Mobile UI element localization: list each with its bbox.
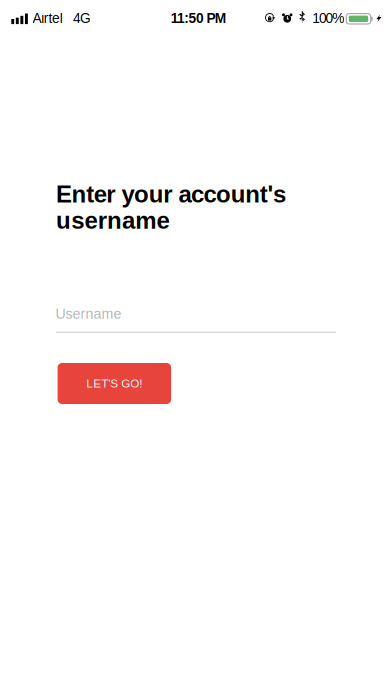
button[interactable]: Username	[56, 300, 336, 334]
staticText: 100%	[312, 11, 344, 26]
staticText: LET'S GO!	[86, 377, 142, 390]
staticText: 4G	[73, 10, 91, 26]
staticText: Username	[56, 306, 122, 322]
staticText: username	[56, 207, 169, 234]
staticText: 11:50 PM	[171, 11, 226, 26]
staticText: Airtel	[32, 10, 63, 26]
staticText: Enter your account's	[56, 181, 286, 207]
button[interactable]: LET'S GO!	[58, 363, 171, 404]
